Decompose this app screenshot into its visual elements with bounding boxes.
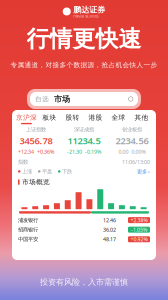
staticText: 其他	[134, 113, 148, 122]
button[interactable]: 浦发银行	[18, 217, 150, 224]
staticText: 48.17	[103, 236, 116, 243]
button[interactable]: 招商银行	[18, 226, 150, 233]
staticText: 市场	[54, 94, 70, 104]
button[interactable]: 全球	[107, 113, 130, 124]
staticText: 深证成指	[74, 126, 94, 133]
button[interactable]: 其他	[130, 113, 153, 124]
button[interactable]: 板块	[38, 113, 61, 124]
staticText: 11234.5	[67, 134, 100, 147]
staticText: +2.38%	[130, 217, 147, 224]
staticText: 0.00	[118, 148, 128, 155]
staticText: 0.00%	[131, 148, 145, 155]
staticText: 板块	[42, 113, 56, 122]
staticText: 港股	[88, 113, 102, 122]
staticText: -0.19%	[85, 148, 101, 155]
staticText: 更多 ›	[137, 168, 150, 175]
staticText: 股转	[65, 113, 79, 122]
staticText: 投资有风险，入市需谨慎	[40, 277, 128, 287]
button[interactable]: 股转	[61, 113, 84, 124]
staticText: 3456.78	[19, 134, 52, 147]
staticText: 创业板指	[122, 126, 142, 133]
staticText: -1.05%	[131, 226, 147, 233]
staticText: 浦发银行	[18, 217, 38, 223]
staticText: +0.36%	[37, 148, 54, 155]
staticText: 全球	[111, 113, 125, 122]
staticText: 指数	[18, 159, 28, 165]
staticText: PENGDA SECURITIES	[73, 15, 98, 18]
button[interactable]: 深证成指	[60, 126, 108, 155]
staticText: 2234.56	[115, 134, 148, 147]
staticText: 下跌	[62, 168, 72, 175]
staticText: +12.34	[18, 148, 34, 155]
button[interactable]: 中国平安	[18, 236, 150, 243]
staticText: -21.30	[67, 148, 82, 155]
staticText: 专属通道，对接多个数据源，抢占机会快人一步	[10, 61, 157, 69]
staticText: 平盘	[42, 168, 52, 175]
staticText: 上证指数	[26, 126, 46, 133]
staticText: 36.02	[103, 226, 116, 233]
staticText: 中国平安	[18, 236, 38, 243]
staticText: 11:06/13:00	[122, 158, 150, 165]
staticText: 行情更快速	[26, 25, 141, 53]
staticText: 12.46	[103, 217, 116, 224]
staticText: +0.92%	[130, 236, 147, 243]
staticText: 上涨	[22, 168, 32, 175]
staticText: 京沪深	[16, 113, 37, 122]
button[interactable]: 上证指数	[12, 126, 60, 155]
button[interactable]: 京沪深	[15, 113, 38, 124]
staticText: 鹏达证券	[73, 5, 105, 15]
staticText: 市场概览	[22, 178, 50, 186]
staticText: 招商银行	[18, 226, 38, 233]
button[interactable]: 港股	[84, 113, 107, 124]
staticText: 自选	[35, 95, 49, 103]
button[interactable]: 创业板指	[108, 126, 156, 155]
